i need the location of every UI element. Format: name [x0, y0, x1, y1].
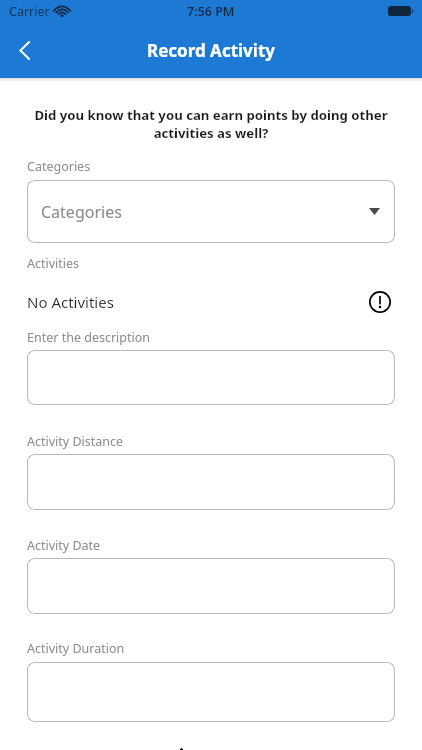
button[interactable] — [27, 558, 395, 614]
staticText: Did you know that you can earn points by… — [34, 106, 388, 142]
staticText: No Activities — [27, 292, 114, 312]
staticText: Activity Date — [27, 537, 101, 554]
staticText: Activity Duration — [27, 640, 125, 657]
staticText: Carrier — [9, 3, 50, 20]
button[interactable] — [27, 350, 395, 405]
button[interactable]: Categories — [27, 180, 395, 243]
staticText: Enter the description — [27, 329, 151, 346]
staticText: Categories — [41, 201, 122, 223]
staticText: Activity Distance — [27, 433, 124, 450]
staticText: 7:56 PM — [187, 3, 235, 20]
button[interactable]: Information — [365, 287, 395, 317]
staticText: Activities — [27, 255, 80, 272]
staticText: Record Activity — [147, 39, 275, 62]
button[interactable] — [27, 662, 395, 722]
button[interactable] — [27, 454, 395, 510]
staticText: Categories — [27, 158, 91, 175]
button[interactable]: Back — [0, 25, 50, 75]
